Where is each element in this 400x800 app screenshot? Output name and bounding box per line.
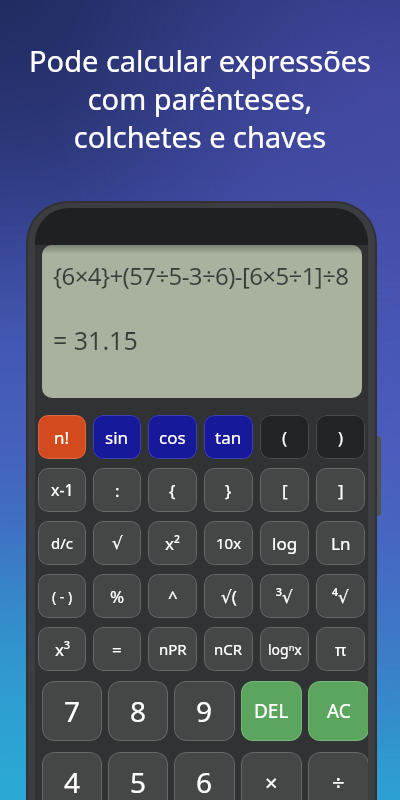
staticText: logⁿx [268,640,302,659]
staticText: sin [105,426,129,449]
staticText: √ [112,533,123,553]
staticText: × [265,767,278,797]
staticText: DEL [254,698,289,724]
button[interactable]: ^ [148,574,197,618]
staticText: { [169,479,176,502]
staticText: ) [338,426,344,449]
button[interactable]: 5 [108,752,168,800]
button[interactable]: nPR [148,627,197,671]
staticText: ^ [168,585,178,608]
button[interactable]: [ [260,468,309,512]
button[interactable]: DEL [241,681,302,741]
staticText: 4 [64,763,81,800]
button[interactable]: logⁿx [260,627,309,671]
staticText: AC [327,698,351,724]
button[interactable]: nCR [204,627,253,671]
staticText: 5 [130,763,147,800]
button[interactable]: = [93,627,141,671]
staticText: n! [54,426,70,449]
button[interactable]: × [241,752,302,800]
button[interactable]: } [204,468,253,512]
button[interactable]: Ln [316,521,365,565]
staticText: ÷ [332,767,345,797]
staticText: 6 [196,763,213,800]
button[interactable]: 10x [204,521,253,565]
button[interactable]: ÷ [308,752,368,800]
button[interactable]: : [93,468,141,512]
button[interactable]: x-1 [38,468,86,512]
button[interactable]: % [93,574,141,618]
button[interactable]: tan [204,415,253,459]
button[interactable]: AC [308,681,368,741]
staticText: 10x [216,533,242,553]
button[interactable]: 4 [42,752,102,800]
staticText: x-1 [51,479,74,501]
button[interactable]: n! [38,415,86,459]
button[interactable]: ] [316,468,365,512]
staticText: √( [221,585,237,608]
staticText: = [112,638,122,661]
button[interactable]: cos [148,415,197,459]
button[interactable]: x² [148,521,197,565]
button[interactable]: ) [316,415,365,459]
staticText: nCR [214,639,243,659]
staticText: ( [282,426,288,449]
staticText: : [115,479,120,502]
button[interactable]: x³ [38,627,86,671]
button[interactable]: sin [93,415,141,459]
button[interactable]: log [260,521,309,565]
button[interactable]: ( - ) [38,574,86,618]
staticText: 8 [130,692,147,730]
button[interactable]: 6 [174,752,235,800]
staticText: Ln [331,532,351,555]
staticText: ⁴√ [332,585,349,608]
staticText: } [225,479,232,502]
staticText: Pode calcular expressões com parênteses,… [0,41,400,156]
button[interactable]: { [148,468,197,512]
button[interactable]: d/c [38,521,86,565]
staticText: = 31.15 [53,323,138,357]
staticText: {6×4}+(57÷5-3÷6)-[6×5÷1]÷8 [53,259,349,292]
button[interactable]: ⁴√ [316,574,365,618]
button[interactable]: ³√ [260,574,309,618]
staticText: nPR [159,639,187,659]
staticText: ] [338,479,344,502]
button[interactable]: 9 [174,681,235,741]
staticText: 9 [196,692,213,730]
staticText: tan [215,426,242,449]
button[interactable]: 7 [42,681,102,741]
button[interactable]: 8 [108,681,168,741]
button[interactable]: √ [93,521,141,565]
staticText: log [272,532,298,555]
button[interactable]: √( [204,574,253,618]
staticText: x² [165,532,180,555]
staticText: x³ [55,638,70,661]
staticText: % [110,585,125,608]
button[interactable]: ( [260,415,309,459]
staticText: π [335,638,347,661]
staticText: d/c [51,533,74,553]
button[interactable]: π [316,627,365,671]
staticText: ³√ [276,585,293,608]
staticText: 7 [64,692,81,730]
staticText: cos [159,426,186,449]
staticText: [ [282,479,288,502]
staticText: ( - ) [52,587,73,606]
